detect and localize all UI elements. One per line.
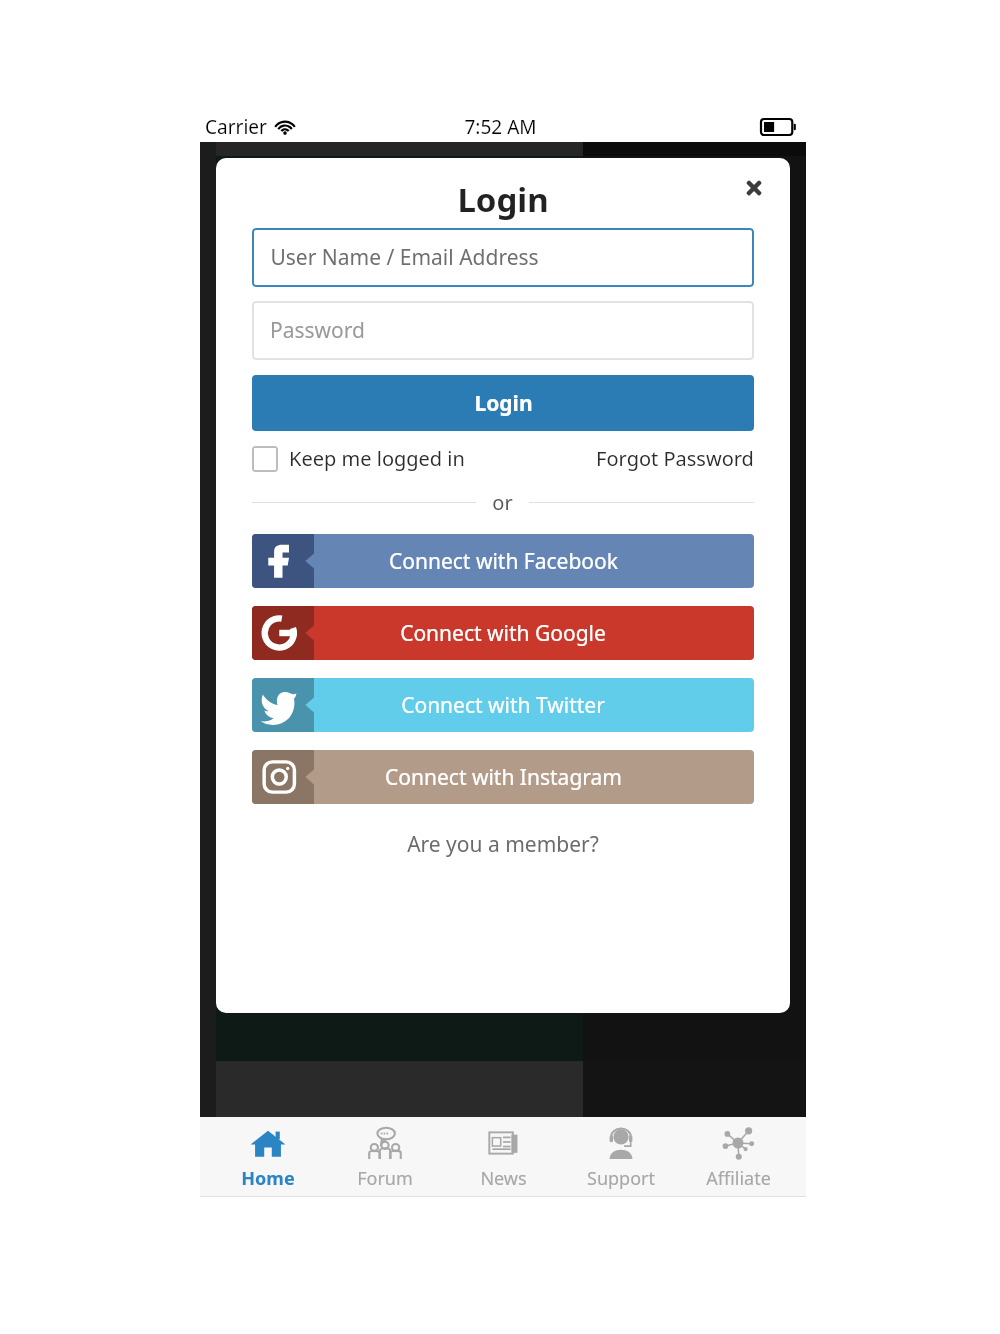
button[interactable]: Connect with Twitter: [252, 678, 754, 732]
staticText: Home: [241, 1166, 295, 1191]
button[interactable]: Forum: [335, 1117, 435, 1197]
staticText: Forgot Password: [596, 445, 754, 472]
button[interactable]: Close: [732, 166, 776, 210]
staticText: Are you a member?: [407, 830, 599, 859]
staticText: Login: [474, 389, 533, 418]
staticText: Forum: [357, 1166, 413, 1191]
staticText: 7:52 AM: [464, 114, 537, 140]
staticText: Login: [457, 177, 549, 222]
button[interactable]: Password: [252, 301, 754, 360]
staticText: News: [480, 1166, 527, 1191]
button[interactable]: User Name / Email Address: [252, 228, 754, 287]
button[interactable]: Home: [218, 1117, 318, 1197]
button[interactable]: Login: [252, 375, 754, 431]
button[interactable]: Connect with Google: [252, 606, 754, 660]
button[interactable]: Connect with Instagram: [252, 750, 754, 804]
button[interactable]: Connect with Facebook: [252, 534, 754, 588]
staticText: Keep me logged in: [289, 445, 465, 472]
button[interactable]: Keep me logged in: [252, 445, 465, 472]
staticText: or: [492, 489, 513, 516]
staticText: Password: [270, 316, 365, 345]
staticText: Connect with Instagram: [385, 763, 622, 792]
button[interactable]: News: [453, 1117, 553, 1197]
button[interactable]: Are you a member?: [252, 830, 754, 859]
button[interactable]: Support: [571, 1117, 671, 1197]
staticText: Connect with Google: [400, 619, 606, 648]
button[interactable]: Affiliate: [688, 1117, 788, 1197]
staticText: Connect with Facebook: [389, 547, 618, 576]
staticText: Affiliate: [706, 1166, 771, 1191]
staticText: Carrier: [205, 114, 267, 140]
staticText: Connect with Twitter: [401, 691, 605, 720]
button[interactable]: Forgot Password: [596, 445, 754, 472]
staticText: Support: [587, 1166, 655, 1191]
staticText: User Name / Email Address: [270, 243, 539, 272]
